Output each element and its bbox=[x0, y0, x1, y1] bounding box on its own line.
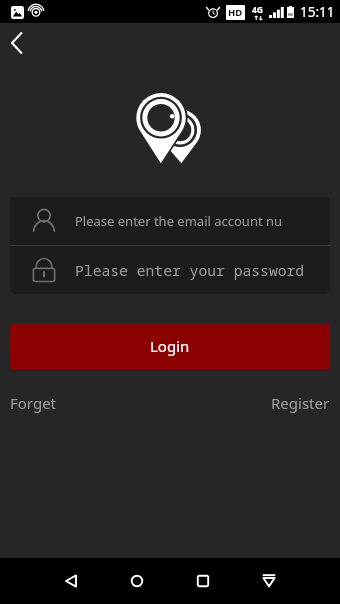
button[interactable]: Recent apps bbox=[180, 558, 226, 604]
button[interactable]: Login bbox=[10, 323, 330, 369]
button[interactable]: Register bbox=[271, 393, 330, 413]
button[interactable]: Back bbox=[0, 23, 34, 63]
staticText: 15:11 bbox=[300, 3, 335, 21]
staticText: Please enter your password bbox=[75, 260, 305, 280]
staticText: Login bbox=[150, 336, 190, 356]
button[interactable]: Please enter your password bbox=[10, 246, 330, 294]
staticText: Register bbox=[271, 393, 330, 413]
button[interactable]: Forget bbox=[10, 393, 57, 413]
button[interactable]: Back bbox=[48, 558, 94, 604]
button[interactable]: Home bbox=[114, 558, 160, 604]
staticText: Forget bbox=[10, 393, 57, 413]
staticText: 4G bbox=[252, 4, 264, 16]
staticText: HD bbox=[228, 6, 243, 19]
button[interactable]: Please enter the email account number bbox=[10, 197, 330, 245]
button[interactable]: Hide keyboard bbox=[246, 558, 292, 604]
staticText: Please enter the email account number bbox=[75, 212, 282, 230]
